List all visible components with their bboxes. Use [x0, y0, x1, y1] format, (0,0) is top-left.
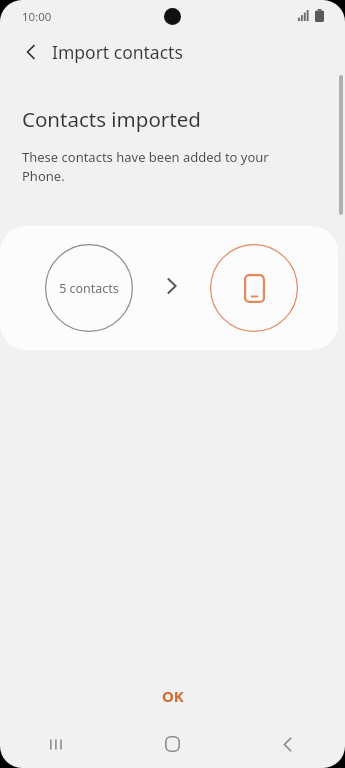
button[interactable]: Home	[115, 720, 230, 768]
button[interactable]: Back	[14, 35, 48, 69]
button[interactable]: Recents	[0, 720, 115, 768]
button[interactable]: 5 contacts	[0, 226, 338, 350]
button[interactable]: Back	[230, 720, 345, 768]
button[interactable]: OK	[113, 678, 233, 714]
staticText: 10:00	[22, 9, 52, 25]
staticText: 5 contacts	[59, 280, 119, 297]
staticText: Contacts imported	[22, 105, 201, 133]
staticText: These contacts have been added to your P…	[22, 148, 310, 185]
staticText: Import contacts	[52, 40, 183, 64]
staticText: OK	[162, 686, 184, 706]
